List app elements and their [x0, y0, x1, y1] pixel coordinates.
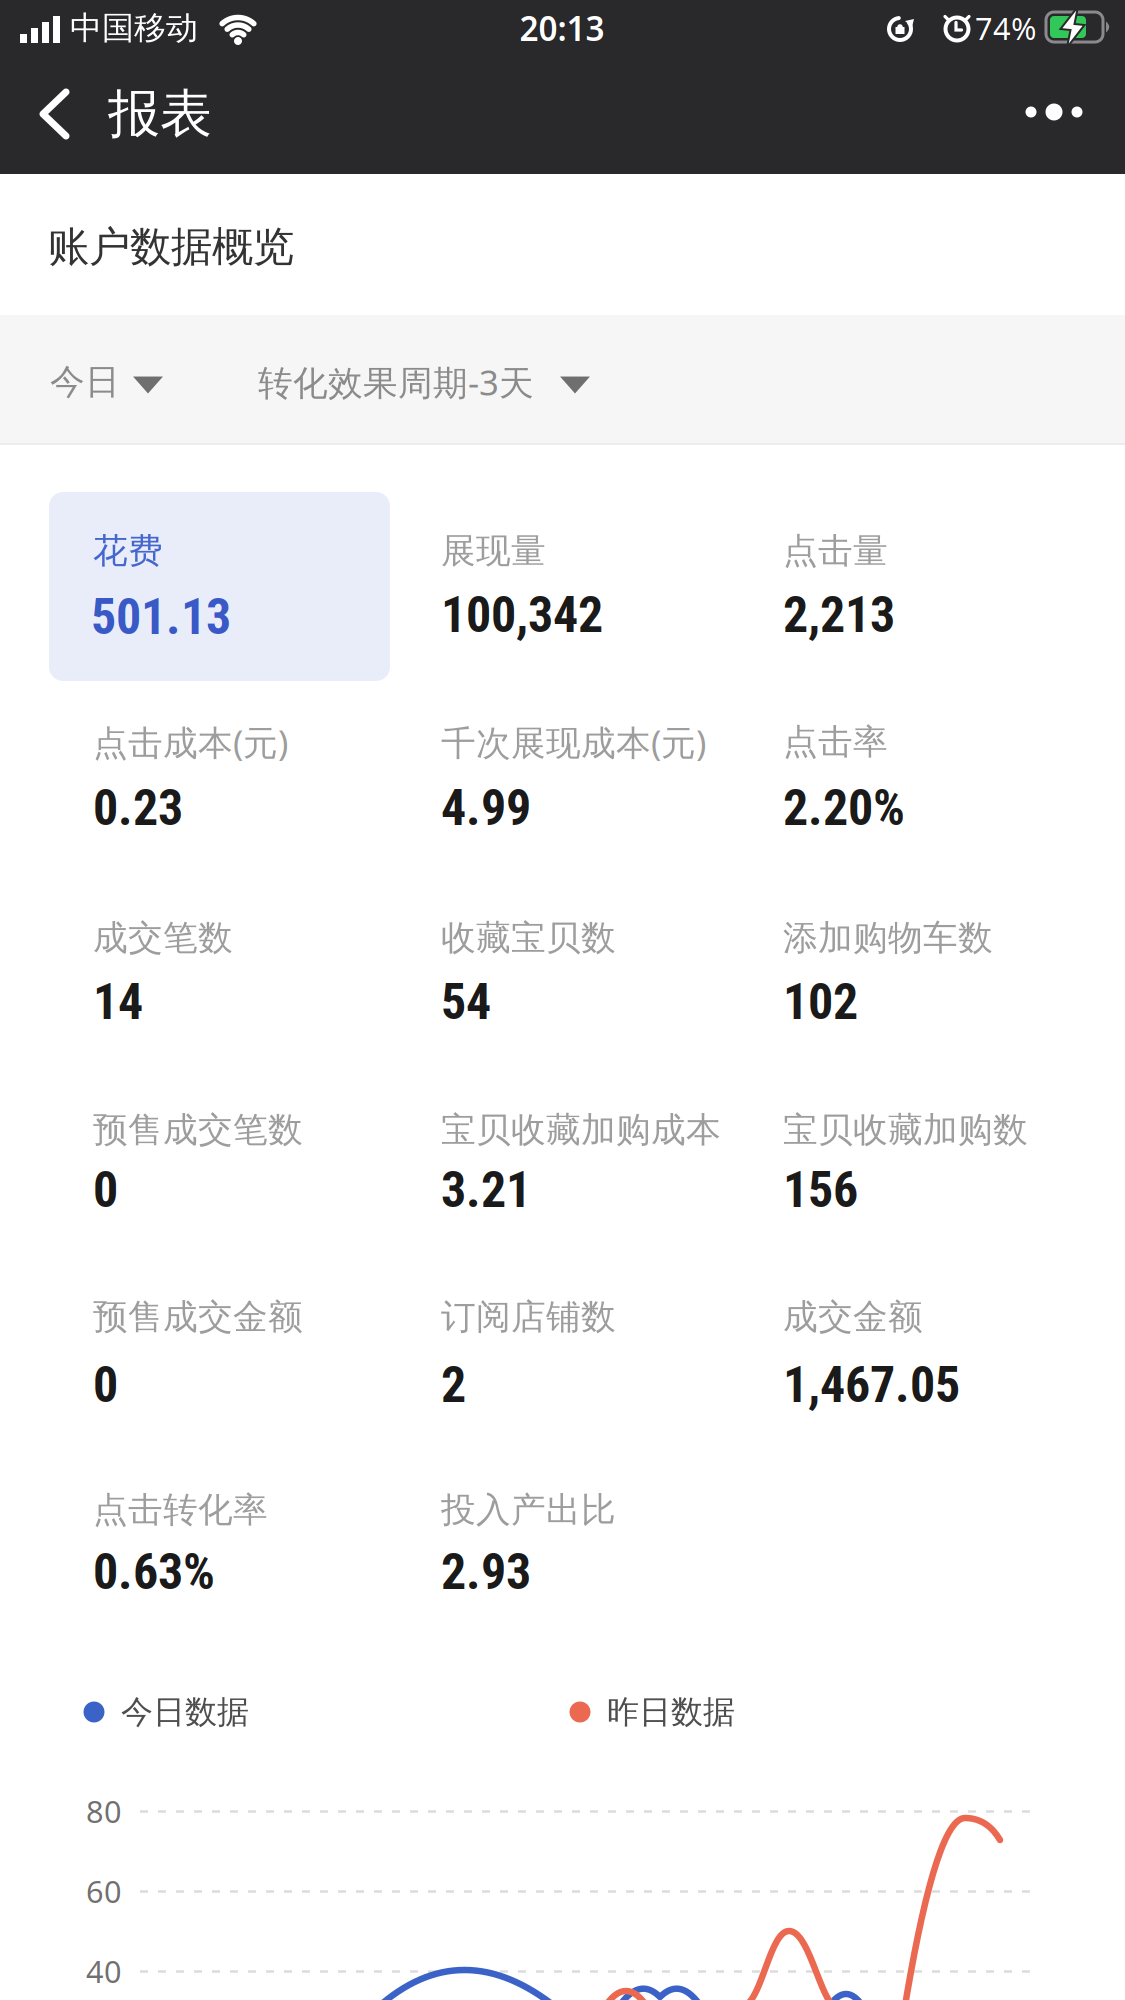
staticText: 0.23	[93, 779, 183, 837]
staticText: 1,467.05	[783, 1356, 960, 1414]
staticText: 4.99	[441, 779, 531, 837]
staticText: 订阅店铺数	[441, 1296, 616, 1338]
staticText: 展现量	[441, 530, 546, 572]
staticText: 添加购物车数	[783, 917, 993, 959]
staticText: 收藏宝贝数	[441, 917, 616, 959]
staticText: 账户数据概览	[48, 222, 294, 272]
staticText: 昨日数据	[607, 1692, 735, 1732]
staticText: 54	[441, 973, 491, 1031]
staticText: 中国移动	[70, 8, 198, 48]
staticText: 60	[86, 1871, 122, 1911]
staticText: 今日	[50, 361, 120, 403]
staticText: 501.13	[91, 588, 231, 646]
button[interactable]: More	[1000, 60, 1108, 164]
staticText: 成交金额	[783, 1296, 923, 1338]
staticText: 14	[93, 973, 143, 1031]
staticText: 千次展现成本(元)	[441, 719, 706, 765]
staticText: 2.93	[441, 1543, 531, 1601]
staticText: 成交笔数	[93, 917, 233, 959]
staticText: 点击量	[783, 530, 888, 572]
button[interactable]: 花费	[49, 492, 390, 681]
staticText: 0.63%	[93, 1543, 215, 1601]
button[interactable]: 今日	[0, 315, 220, 443]
staticText: 20:13	[519, 6, 604, 50]
staticText: 点击率	[783, 721, 888, 763]
staticText: 102	[783, 973, 858, 1031]
staticText: 0	[93, 1161, 118, 1219]
staticText: 宝贝收藏加购数	[783, 1109, 1028, 1151]
staticText: 2	[441, 1356, 466, 1414]
button[interactable]: 转化效果周期-3天	[258, 315, 618, 443]
staticText: 今日数据	[121, 1692, 249, 1732]
staticText: 2.20%	[783, 779, 905, 837]
staticText: 点击成本(元)	[93, 719, 288, 765]
staticText: 转化效果周期-3天	[258, 359, 534, 405]
staticText: 投入产出比	[441, 1489, 616, 1531]
staticText: 预售成交金额	[93, 1296, 303, 1338]
staticText: 3.21	[441, 1161, 531, 1219]
staticText: 0	[93, 1356, 118, 1414]
staticText: 报表	[108, 82, 212, 146]
staticText: 预售成交笔数	[93, 1109, 303, 1151]
staticText: 74%	[975, 8, 1036, 48]
staticText: 花费	[93, 530, 163, 572]
staticText: 点击转化率	[93, 1489, 268, 1531]
staticText: 宝贝收藏加购成本	[441, 1109, 721, 1151]
staticText: 156	[783, 1161, 858, 1219]
staticText: 80	[86, 1791, 122, 1831]
staticText: 2,213	[783, 586, 895, 644]
staticText: 100,342	[441, 586, 603, 644]
button[interactable]: Back	[0, 0, 110, 174]
staticText: 40	[86, 1951, 122, 1991]
